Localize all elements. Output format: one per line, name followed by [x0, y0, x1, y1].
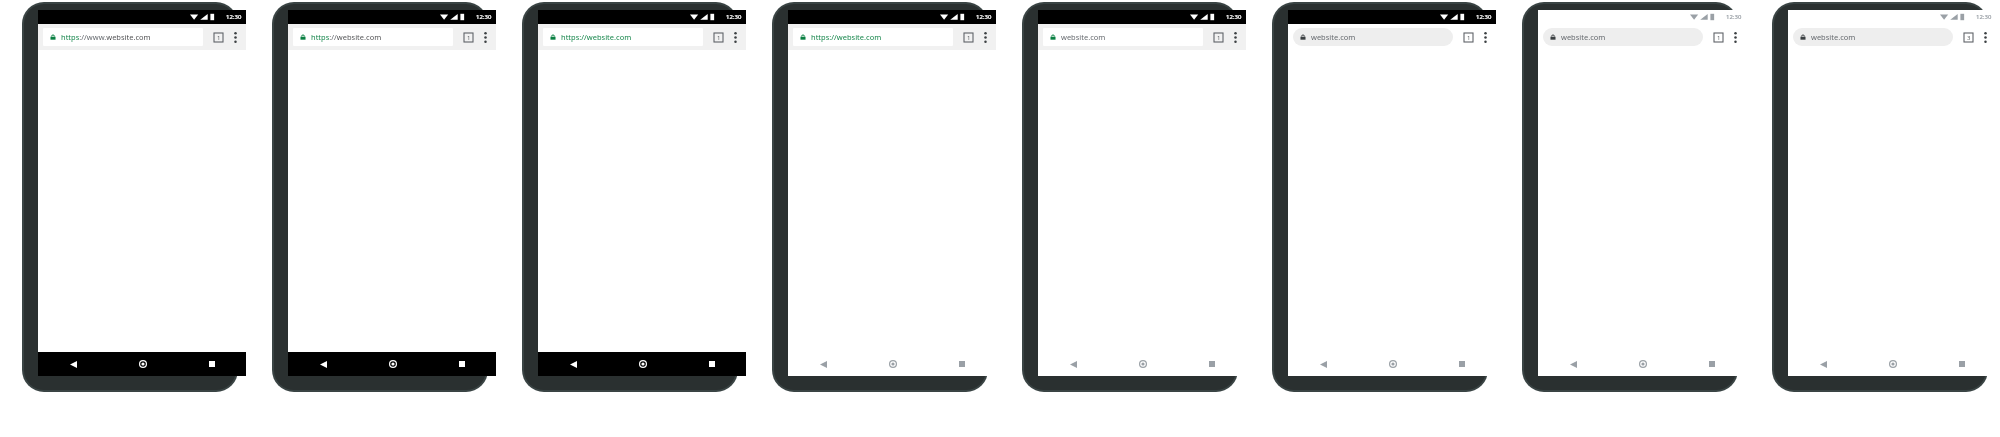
button[interactable]: Home — [858, 352, 927, 376]
staticText: https://website.com — [311, 32, 382, 42]
button[interactable]: https://website.com — [543, 28, 703, 46]
button[interactable]: Recents — [427, 352, 496, 376]
staticText: https://www.website.com — [61, 32, 151, 42]
staticText: 12:30 — [226, 13, 242, 21]
button[interactable]: Recents — [177, 352, 246, 376]
button[interactable]: website.com — [1543, 28, 1703, 46]
button[interactable]: Recents — [1177, 352, 1246, 376]
staticText: 1 — [1217, 34, 1221, 42]
button[interactable]: More options — [227, 29, 243, 45]
button[interactable]: Tabs — [1959, 28, 1977, 46]
button[interactable]: Tabs — [1709, 28, 1727, 46]
button[interactable]: More options — [977, 29, 993, 45]
staticText: 1 — [467, 34, 471, 42]
button[interactable]: Back — [38, 352, 108, 376]
button[interactable]: Back — [1288, 352, 1358, 376]
button[interactable]: Home — [1108, 352, 1177, 376]
staticText: 12:30 — [726, 13, 742, 21]
button[interactable]: https://website.com — [293, 28, 453, 46]
button[interactable]: Recents — [1927, 352, 1996, 376]
button[interactable]: Tabs — [1459, 28, 1477, 46]
button[interactable]: Recents — [677, 352, 746, 376]
button[interactable]: More options — [727, 29, 743, 45]
button[interactable]: More options — [1227, 29, 1243, 45]
staticText: 3 — [1967, 34, 1971, 42]
button[interactable]: Home — [1358, 352, 1427, 376]
button[interactable]: Back — [1788, 352, 1858, 376]
button[interactable]: Home — [608, 352, 677, 376]
staticText: website.com — [1561, 32, 1606, 42]
button[interactable]: Recents — [1427, 352, 1496, 376]
button[interactable]: https://www.website.com — [43, 28, 203, 46]
staticText: website.com — [1061, 32, 1106, 42]
button[interactable]: More options — [477, 29, 493, 45]
button[interactable]: Back — [1538, 352, 1608, 376]
staticText: 12:30 — [476, 13, 492, 21]
button[interactable]: Back — [288, 352, 358, 376]
button[interactable]: website.com — [1793, 28, 1953, 46]
button[interactable]: Tabs — [459, 28, 477, 46]
button[interactable]: Tabs — [709, 28, 727, 46]
staticText: website.com — [1811, 32, 1856, 42]
button[interactable]: Back — [1038, 352, 1108, 376]
button[interactable]: More options — [1977, 29, 1993, 45]
button[interactable]: Recents — [927, 352, 996, 376]
button[interactable]: website.com — [1043, 28, 1203, 46]
button[interactable]: https://website.com — [793, 28, 953, 46]
button[interactable]: website.com — [1293, 28, 1453, 46]
staticText: 12:30 — [1726, 13, 1742, 21]
staticText: 1 — [967, 34, 971, 42]
button[interactable]: Home — [1858, 352, 1927, 376]
staticText: 12:30 — [1226, 13, 1242, 21]
staticText: 12:30 — [976, 13, 992, 21]
staticText: 12:30 — [1976, 13, 1992, 21]
button[interactable]: Home — [108, 352, 177, 376]
staticText: 1 — [1717, 34, 1721, 42]
button[interactable]: Recents — [1677, 352, 1746, 376]
button[interactable]: Home — [358, 352, 427, 376]
button[interactable]: Back — [538, 352, 608, 376]
staticText: 1 — [1467, 34, 1471, 42]
button[interactable]: More options — [1477, 29, 1493, 45]
button[interactable]: Tabs — [959, 28, 977, 46]
button[interactable]: More options — [1727, 29, 1743, 45]
staticText: 1 — [217, 34, 221, 42]
staticText: https://website.com — [811, 32, 882, 42]
button[interactable]: Home — [1608, 352, 1677, 376]
button[interactable]: Tabs — [209, 28, 227, 46]
staticText: website.com — [1311, 32, 1356, 42]
button[interactable]: Tabs — [1209, 28, 1227, 46]
button[interactable]: Back — [788, 352, 858, 376]
staticText: 1 — [717, 34, 721, 42]
staticText: 12:30 — [1476, 13, 1492, 21]
staticText: https://website.com — [561, 32, 632, 42]
